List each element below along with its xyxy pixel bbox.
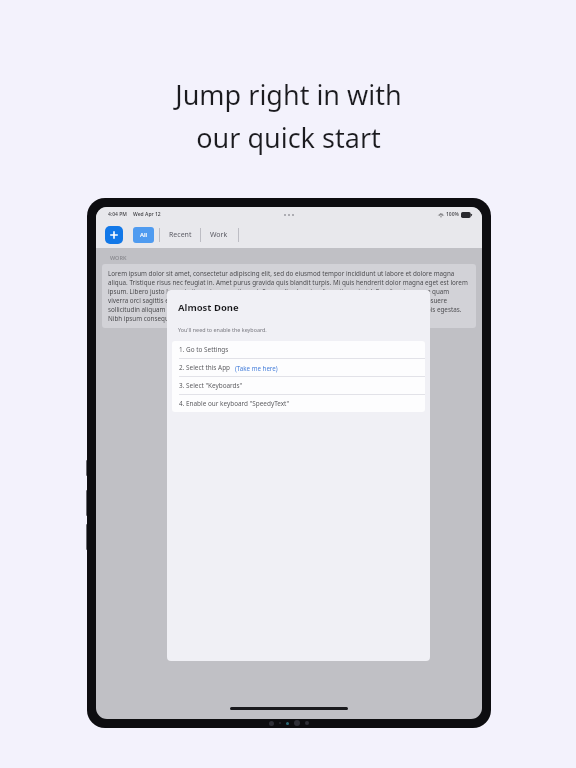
staticText: You'll need to enable the keyboard. [178,326,267,333]
button[interactable]: 4. Enable our keyboard "SpeedyText" [172,395,425,412]
staticText: WORK [110,254,127,261]
staticText: 1. Go to Settings [179,345,229,354]
staticText: 100% [446,211,459,218]
button[interactable]: 2. Select this App [172,359,425,376]
button[interactable]: 1. Go to Settings [172,341,425,358]
staticText: Work [210,230,228,240]
staticText: 3. Select "Keyboards" [179,381,243,390]
staticText: 4:04 PM [108,211,127,218]
button[interactable]: Add note [105,226,123,244]
staticText: Jump right in with [175,76,402,113]
staticText: 2. Select this App [179,363,231,372]
staticText: Recent [169,230,192,240]
staticText: Almost Done [178,301,239,314]
button[interactable]: All [133,227,154,243]
staticText: All [140,231,148,239]
staticText: (Take me here) [235,364,278,372]
staticText: 4. Enable our keyboard "SpeedyText" [179,399,290,408]
staticText: Lorem ipsum dolor sit amet, consectetur … [108,269,470,323]
button[interactable]: 3. Select "Keyboards" [172,377,425,394]
staticText: Wed Apr 12 [133,211,161,218]
button[interactable]: Recent [165,227,196,243]
staticText: our quick start [196,119,381,156]
button[interactable]: Work [206,227,232,243]
